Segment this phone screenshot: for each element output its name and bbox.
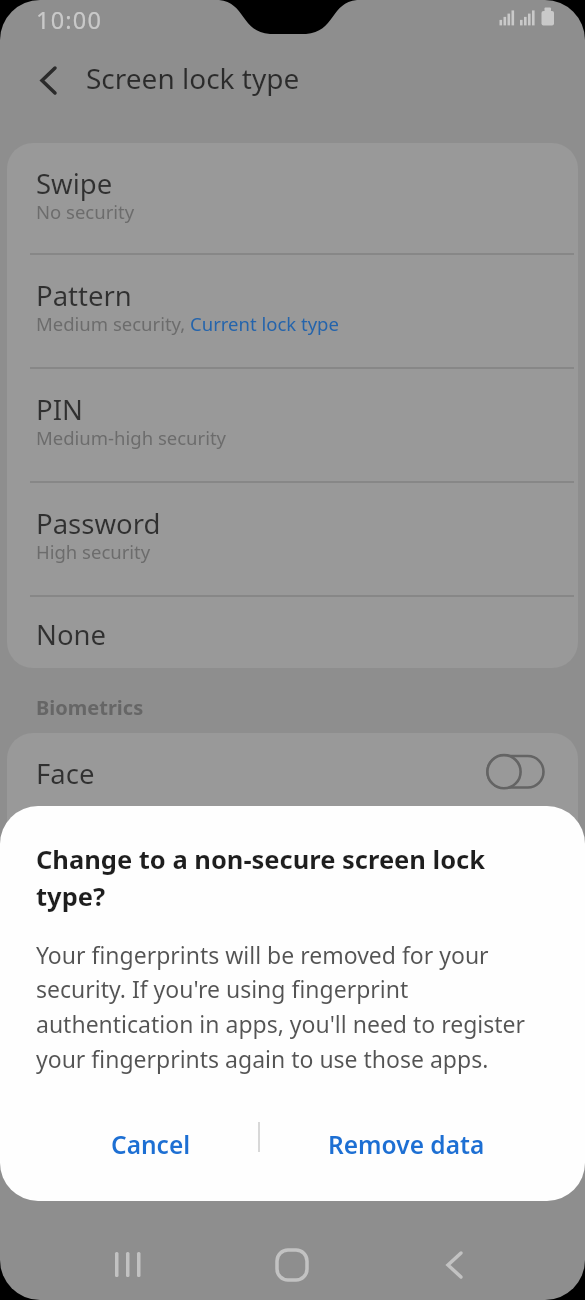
staticText: Biometrics bbox=[36, 694, 144, 721]
staticText: Medium-high security bbox=[36, 425, 227, 450]
staticText: Screen lock type bbox=[86, 59, 300, 97]
staticText: High security bbox=[36, 539, 151, 564]
staticText: Face bbox=[36, 755, 95, 792]
staticText: Medium security, Current lock type bbox=[36, 311, 339, 336]
staticText: Pattern bbox=[36, 277, 132, 314]
staticText: Your fingerprints will be removed for yo… bbox=[36, 939, 526, 1075]
staticText: Password bbox=[36, 505, 161, 542]
staticText: 10:00 bbox=[36, 4, 103, 36]
staticText: Remove data bbox=[328, 1128, 485, 1161]
staticText: PIN bbox=[36, 391, 83, 428]
staticText: Swipe bbox=[36, 165, 113, 202]
staticText: None bbox=[36, 616, 107, 653]
staticText: No security bbox=[36, 199, 135, 224]
staticText: Cancel bbox=[111, 1128, 191, 1161]
staticText: Change to a non-secure screen lock type? bbox=[36, 842, 486, 914]
